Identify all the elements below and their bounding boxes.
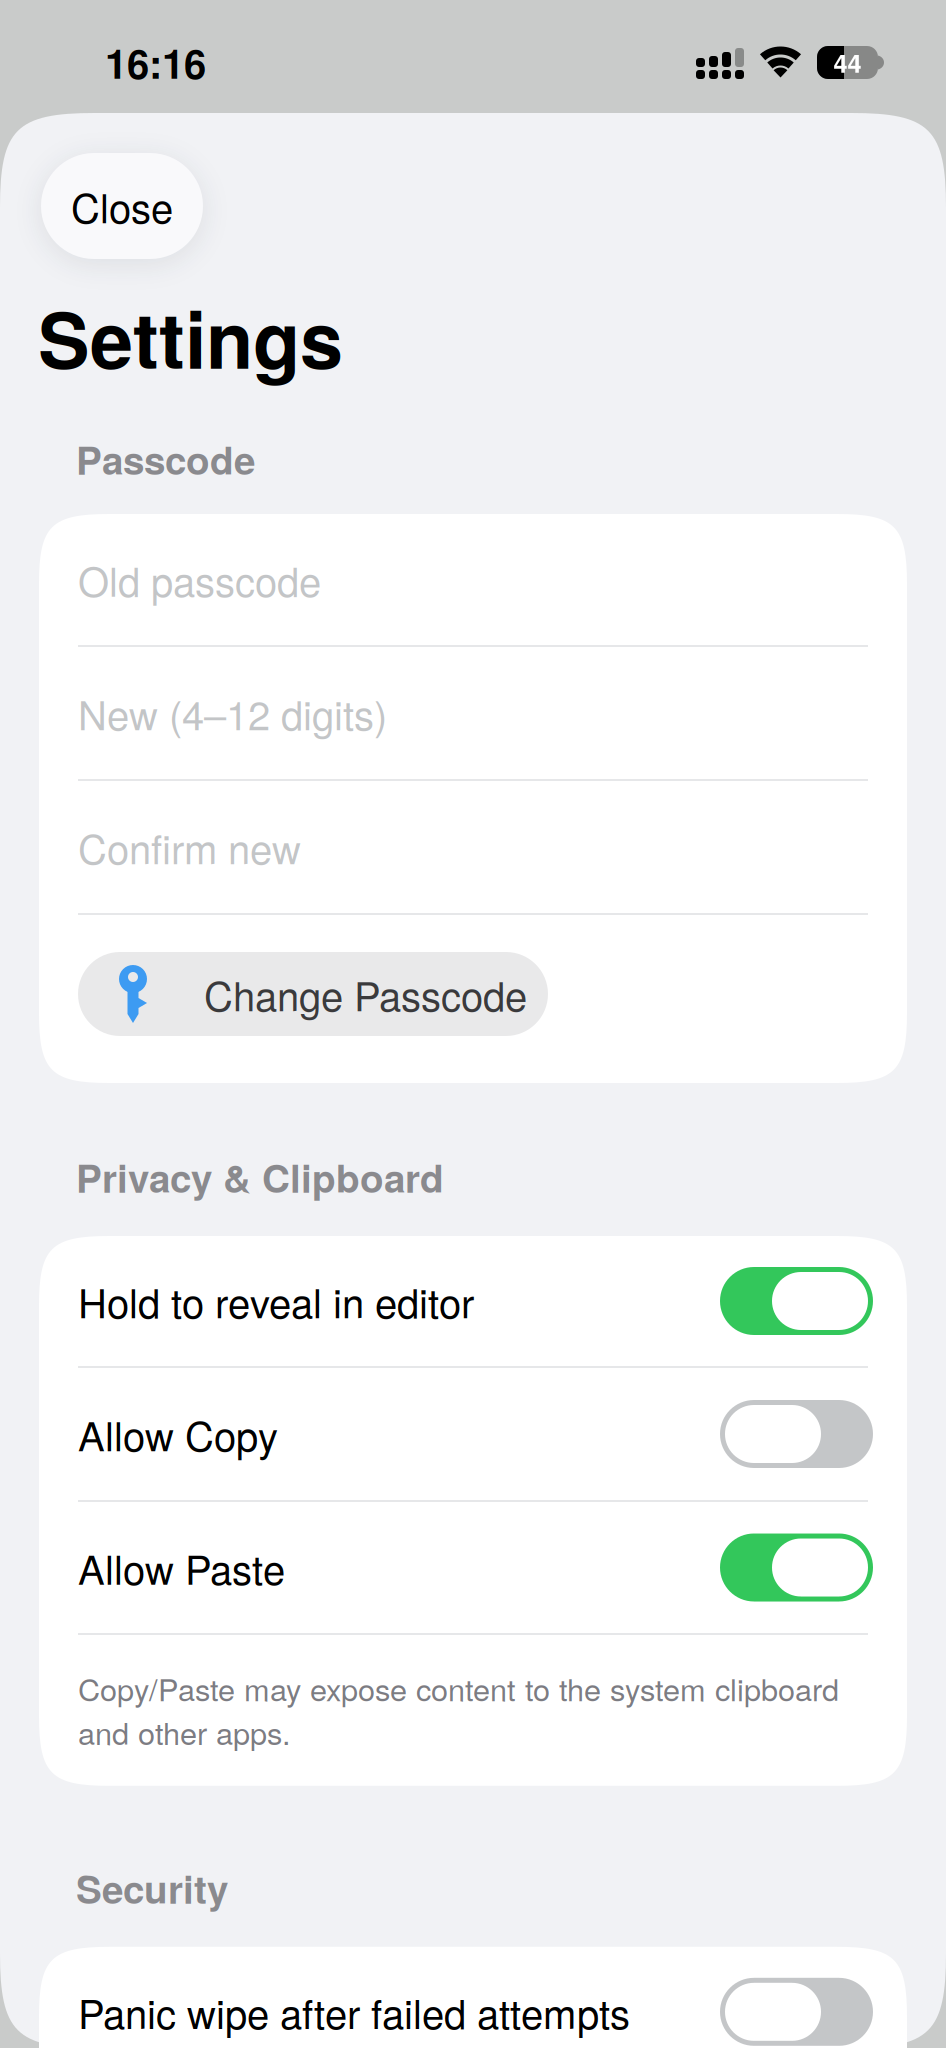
staticText: Settings xyxy=(38,282,343,392)
button[interactable]: Old passcode xyxy=(78,514,868,645)
staticText: Old passcode xyxy=(78,551,321,608)
button[interactable]: Allow Copy xyxy=(78,1368,868,1500)
staticText: Panic wipe after failed attempts xyxy=(78,1983,630,2040)
button[interactable]: Panic wipe after failed attempts xyxy=(78,1947,868,2048)
button[interactable]: Change Passcode xyxy=(78,952,548,1036)
button[interactable]: Allow Paste xyxy=(78,1502,868,1633)
button[interactable]: Hold to reveal in editor xyxy=(78,1236,868,1366)
staticText: Privacy & Clipboard xyxy=(76,1149,444,1205)
staticText: Confirm new xyxy=(78,818,301,876)
staticText: 44 xyxy=(833,44,861,81)
staticText: 16:16 xyxy=(105,34,206,91)
staticText: Security xyxy=(76,1860,228,1915)
staticText: Hold to reveal in editor xyxy=(78,1272,474,1330)
button[interactable]: Close xyxy=(41,153,203,259)
staticText: Change Passcode xyxy=(204,965,527,1023)
staticText: New (4–12 digits) xyxy=(78,684,387,742)
staticText: Allow Paste xyxy=(78,1539,285,1596)
button[interactable]: New (4–12 digits) xyxy=(78,647,868,779)
staticText: Passcode xyxy=(76,431,255,487)
staticText: Copy/Paste may expose content to the sys… xyxy=(78,1666,839,1710)
staticText: Close xyxy=(71,177,173,235)
button[interactable]: Confirm new xyxy=(78,781,868,913)
staticText: and other apps. xyxy=(78,1710,291,1754)
staticText: Allow Copy xyxy=(78,1405,278,1463)
